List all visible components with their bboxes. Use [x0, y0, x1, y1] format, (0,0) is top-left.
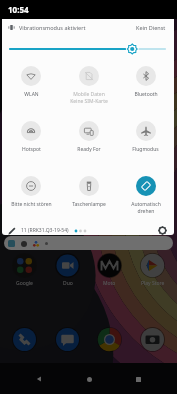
button[interactable]: Back [28, 368, 50, 390]
staticText: Vibrationsmodus aktiviert [19, 24, 86, 31]
button[interactable]: App [97, 327, 122, 352]
button[interactable]: Play Store [140, 253, 165, 278]
button[interactable]: Automatisch drehen [117, 171, 174, 226]
staticText: Bitte nicht stören [11, 201, 52, 208]
staticText: WLAN [24, 91, 39, 98]
staticText: 11 (RRK31.Q3-19-54) [21, 227, 69, 234]
staticText: Bluetooth [134, 91, 158, 98]
button[interactable]: Duo [55, 253, 80, 278]
button[interactable]: Edit [8, 227, 16, 235]
staticText: 10:54 [8, 4, 29, 15]
button[interactable]: App [140, 327, 165, 352]
staticText: Flugmodus [132, 146, 159, 153]
button[interactable]: Home [78, 368, 100, 390]
button[interactable]: Hotspot [2, 116, 60, 171]
button[interactable]: Recents [127, 368, 149, 390]
staticText: Mobile Daten [73, 91, 105, 98]
button[interactable]: Flugmodus [117, 116, 174, 171]
button[interactable]: Taschenlampe [60, 171, 117, 226]
staticText: Play Store [141, 280, 165, 287]
staticText: Duo [63, 280, 73, 287]
button[interactable]: WLAN [2, 61, 60, 116]
button[interactable]: Google [12, 253, 37, 278]
staticText: Keine SIM-Karte [70, 98, 108, 105]
staticText: Kein Dienst [136, 24, 166, 31]
button[interactable]: App [55, 327, 80, 352]
button[interactable]: App [12, 327, 37, 352]
button[interactable]: Ready For [60, 116, 117, 171]
staticText: Automatisch drehen [131, 201, 161, 215]
button[interactable]: Moto [97, 253, 122, 278]
staticText: Ready For [77, 146, 101, 153]
button[interactable]: Bluetooth [117, 61, 174, 116]
staticText: Moto [103, 280, 116, 287]
button[interactable]: Mobile Daten [60, 61, 117, 116]
staticText: Google [16, 280, 33, 287]
staticText: Taschenlampe [72, 201, 106, 208]
button[interactable]: Search [4, 236, 173, 250]
button[interactable]: Brightness [9, 43, 166, 55]
staticText: Hotspot [22, 146, 41, 153]
button[interactable]: Settings [158, 226, 167, 235]
button[interactable]: Bitte nicht stören [2, 171, 60, 226]
